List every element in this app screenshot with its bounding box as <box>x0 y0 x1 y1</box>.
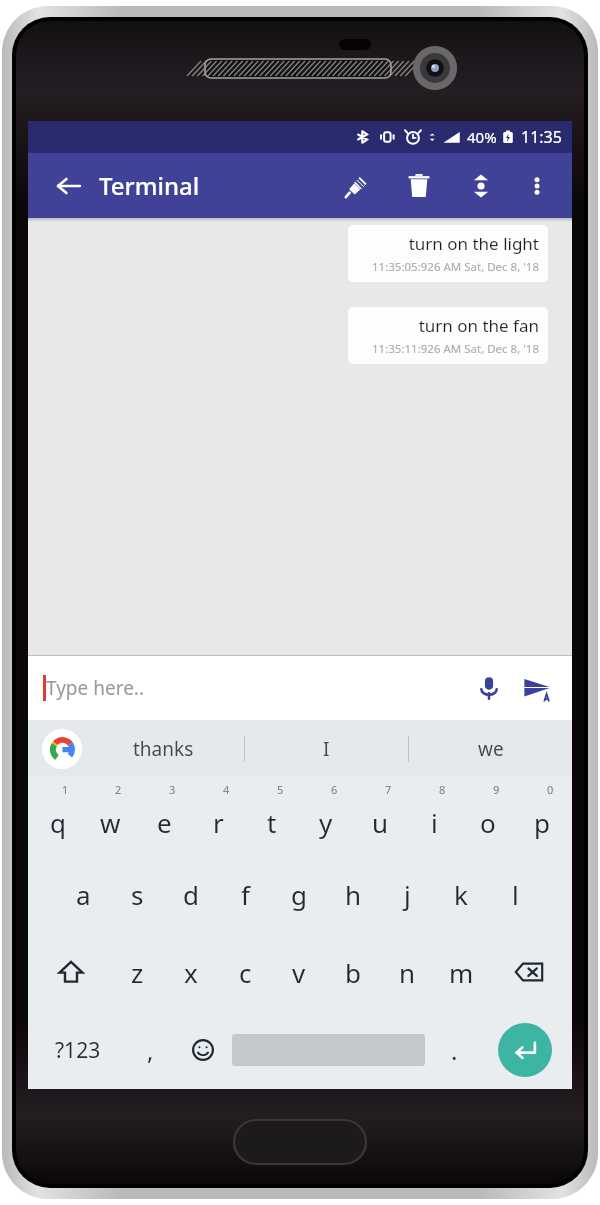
staticText: w <box>100 805 121 840</box>
button[interactable]: ?123 <box>31 1011 124 1089</box>
staticText: e <box>157 805 172 840</box>
button[interactable]: . <box>428 1011 481 1089</box>
button[interactable]: 0 <box>515 777 569 855</box>
staticText: 2 <box>115 782 122 797</box>
button[interactable]: d <box>164 855 218 933</box>
button[interactable]: 2 <box>84 777 137 855</box>
staticText: 11:35 <box>521 126 562 148</box>
staticText: z <box>131 955 144 990</box>
staticText: turn on the fan <box>418 314 539 337</box>
staticText: 40% <box>467 127 497 147</box>
button[interactable]: Shift <box>31 933 111 1011</box>
staticText: thanks <box>133 736 194 762</box>
button[interactable]: s <box>110 855 164 933</box>
staticText: s <box>131 877 144 912</box>
staticText: d <box>183 877 199 912</box>
button[interactable]: More options <box>514 163 560 209</box>
staticText: turn on the light <box>408 232 539 255</box>
button[interactable]: Scroll <box>458 163 504 209</box>
button[interactable]: 5 <box>245 777 299 855</box>
button[interactable]: h <box>326 855 380 933</box>
button[interactable]: Type here.. <box>46 655 467 720</box>
staticText: 7 <box>385 782 392 797</box>
staticText: 3 <box>169 782 176 797</box>
button[interactable]: Connect <box>334 163 380 209</box>
button[interactable]: Emoji <box>176 1011 229 1089</box>
staticText: o <box>480 805 496 840</box>
staticText: 4 <box>223 782 230 797</box>
staticText: I <box>323 736 330 762</box>
staticText: p <box>534 805 550 840</box>
staticText: 0 <box>547 782 554 797</box>
staticText: j <box>404 877 411 912</box>
button[interactable]: turn on the light <box>348 225 548 282</box>
button[interactable]: k <box>434 855 488 933</box>
staticText: 11:35:05:926 AM Sat, Dec 8, '18 <box>372 259 539 275</box>
staticText: q <box>50 805 66 840</box>
staticText: 5 <box>277 782 284 797</box>
staticText: g <box>291 877 307 912</box>
button[interactable]: j <box>380 855 434 933</box>
button[interactable]: m <box>434 933 488 1011</box>
button[interactable]: z <box>111 933 164 1011</box>
button[interactable]: , <box>124 1011 176 1089</box>
button[interactable]: 7 <box>353 777 407 855</box>
button[interactable]: 6 <box>299 777 353 855</box>
staticText: Type here.. <box>46 675 145 701</box>
staticText: b <box>345 955 361 990</box>
button[interactable]: g <box>272 855 326 933</box>
button[interactable]: Google <box>42 729 82 769</box>
staticText: r <box>213 805 224 840</box>
staticText: k <box>454 877 468 912</box>
staticText: f <box>241 877 250 912</box>
button[interactable]: Send <box>514 665 560 711</box>
button[interactable]: we <box>409 720 572 777</box>
staticText: h <box>345 877 362 912</box>
button[interactable]: I <box>245 720 408 777</box>
button[interactable]: c <box>218 933 272 1011</box>
staticText: y <box>319 805 333 840</box>
staticText: u <box>372 805 389 840</box>
staticText: 8 <box>439 782 446 797</box>
button[interactable]: 9 <box>461 777 515 855</box>
staticText: 11:35:11:926 AM Sat, Dec 8, '18 <box>372 341 539 357</box>
staticText: 1 <box>62 782 69 797</box>
button[interactable]: b <box>326 933 380 1011</box>
button[interactable]: n <box>380 933 434 1011</box>
button[interactable]: thanks <box>82 720 244 777</box>
button[interactable]: 1 <box>31 777 84 855</box>
staticText: v <box>292 955 306 990</box>
button[interactable]: Enter <box>498 1023 552 1077</box>
button[interactable]: v <box>272 933 326 1011</box>
staticText: l <box>512 877 519 912</box>
button[interactable]: Backspace <box>488 933 569 1011</box>
button[interactable]: f <box>218 855 272 933</box>
staticText: 6 <box>331 782 338 797</box>
staticText: ?123 <box>55 1036 101 1065</box>
staticText: x <box>184 955 198 990</box>
staticText: m <box>449 955 474 990</box>
button[interactable]: 3 <box>137 777 191 855</box>
button[interactable]: Back <box>46 163 92 209</box>
staticText: i <box>431 805 438 840</box>
button[interactable]: Delete <box>396 163 442 209</box>
staticText: Terminal <box>99 169 200 202</box>
staticText: 9 <box>493 782 500 797</box>
button[interactable]: x <box>164 933 218 1011</box>
button[interactable]: a <box>57 855 110 933</box>
staticText: . <box>451 1034 458 1067</box>
button[interactable]: l <box>488 855 542 933</box>
staticText: t <box>267 805 277 840</box>
button[interactable]: 8 <box>407 777 461 855</box>
button[interactable]: 4 <box>191 777 245 855</box>
staticText: a <box>76 877 91 912</box>
button[interactable]: Voice input <box>467 666 511 710</box>
button[interactable]: turn on the fan <box>348 307 548 364</box>
staticText: we <box>478 736 504 762</box>
staticText: c <box>239 955 252 990</box>
staticText: , <box>147 1034 154 1067</box>
staticText: n <box>399 955 416 990</box>
